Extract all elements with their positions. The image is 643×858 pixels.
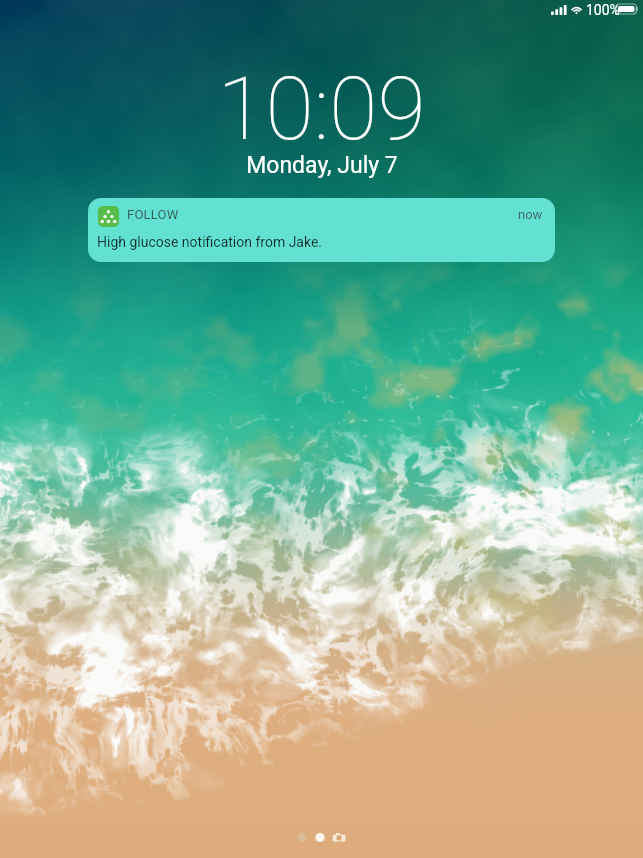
staticText: Monday, July 7 bbox=[246, 152, 398, 179]
button[interactable]: Open camera bbox=[331, 829, 347, 846]
button[interactable]: FOLLOW bbox=[88, 198, 555, 262]
staticText: 10:09 bbox=[217, 57, 426, 160]
staticText: High glucose notification from Jake. bbox=[97, 234, 323, 250]
staticText: FOLLOW bbox=[127, 207, 179, 222]
staticText: now bbox=[518, 207, 543, 222]
staticText: 100% bbox=[586, 2, 620, 18]
